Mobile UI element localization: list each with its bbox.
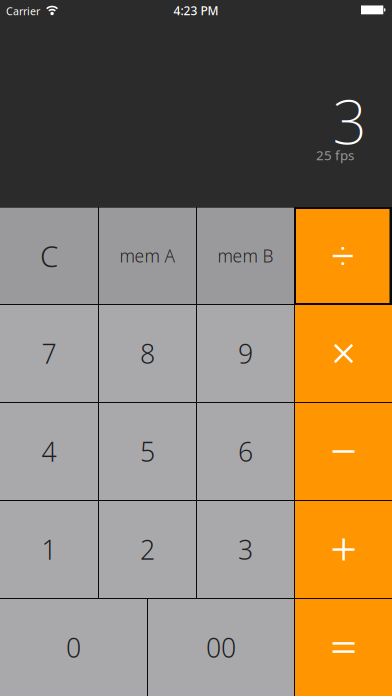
staticText: 8: [140, 336, 155, 371]
button[interactable]: 00: [148, 599, 294, 696]
button[interactable]: Multiply: [295, 305, 392, 402]
button[interactable]: C: [0, 208, 98, 304]
staticText: mem B: [217, 244, 273, 267]
staticText: 00: [206, 630, 236, 665]
staticText: 3: [238, 532, 253, 567]
button[interactable]: Add: [295, 501, 392, 598]
button[interactable]: Equals: [295, 599, 392, 696]
staticText: 25 fps: [316, 146, 354, 164]
button[interactable]: 6: [197, 403, 294, 500]
button[interactable]: Divide: [296, 209, 389, 303]
button[interactable]: mem B: [197, 208, 294, 304]
button[interactable]: 4: [0, 403, 98, 500]
staticText: 3: [332, 81, 366, 161]
staticText: mem A: [119, 244, 175, 267]
button[interactable]: 5: [99, 403, 196, 500]
staticText: 7: [41, 336, 56, 371]
button[interactable]: mem A: [99, 208, 196, 304]
staticText: C: [40, 236, 58, 275]
button[interactable]: 8: [99, 305, 196, 402]
button[interactable]: 7: [0, 305, 98, 402]
staticText: 4: [41, 434, 56, 469]
staticText: 2: [140, 532, 155, 567]
button[interactable]: 9: [197, 305, 294, 402]
button[interactable]: 2: [99, 501, 196, 598]
staticText: Carrier: [6, 4, 40, 18]
staticText: 6: [238, 434, 253, 469]
button[interactable]: 0: [0, 599, 147, 696]
staticText: 9: [238, 336, 253, 371]
button[interactable]: 1: [0, 501, 98, 598]
staticText: 5: [140, 434, 155, 469]
button[interactable]: 3: [197, 501, 294, 598]
staticText: 1: [41, 532, 56, 567]
staticText: 0: [66, 630, 81, 665]
staticText: 4:23 PM: [173, 3, 218, 19]
button[interactable]: Subtract: [295, 403, 392, 500]
